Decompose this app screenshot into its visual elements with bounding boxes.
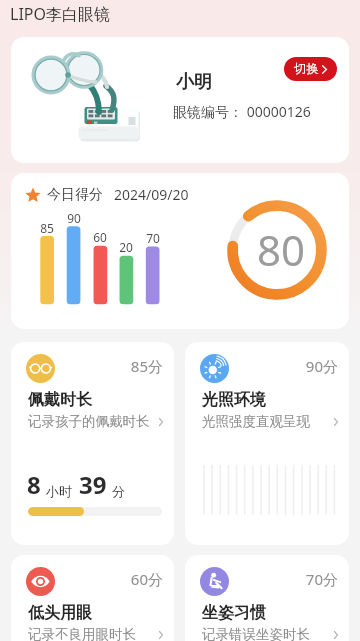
staticText: 小时 [46,483,72,499]
staticText: 记录不良用眼时长 [28,626,136,641]
staticText: 70 [138,230,168,246]
button[interactable]: 70分 [185,555,349,641]
staticText: 85分 [11,356,163,376]
staticText: 记录错误坐姿时长 [202,626,310,641]
staticText: 切换 [294,61,319,77]
staticText: 90 [59,210,89,226]
staticText: 39 [79,468,107,501]
button[interactable]: 90分 [185,342,349,545]
staticText: 坐姿习惯 [202,603,266,623]
staticText: 佩戴时长 [28,390,92,410]
button[interactable]: 切换 [284,57,337,81]
staticText: 光照强度直观呈现 [202,413,310,430]
staticText: 低头用眼 [28,603,92,623]
staticText: 60 [85,229,115,245]
staticText: 小明 [176,71,212,94]
staticText: 分 [112,483,125,499]
staticText: 60分 [11,569,163,589]
staticText: 记录孩子的佩戴时长 [28,413,150,430]
staticText: 80 [255,221,307,278]
staticText: 85 [32,220,62,236]
button[interactable]: 85分 [11,342,174,545]
staticText: 眼镜编号： 00000126 [173,102,311,121]
staticText: LIPO李白眼镜 [10,3,110,25]
staticText: 光照环境 [202,390,266,410]
staticText: 20 [111,239,141,255]
staticText: 8 [27,468,41,501]
staticText: 90分 [185,356,338,376]
button[interactable]: 60分 [11,555,174,641]
staticText: 2024/09/20 [114,185,189,204]
button[interactable]: 小明 [11,37,349,163]
staticText: 70分 [185,569,338,589]
staticText: 今日得分 [47,186,103,204]
